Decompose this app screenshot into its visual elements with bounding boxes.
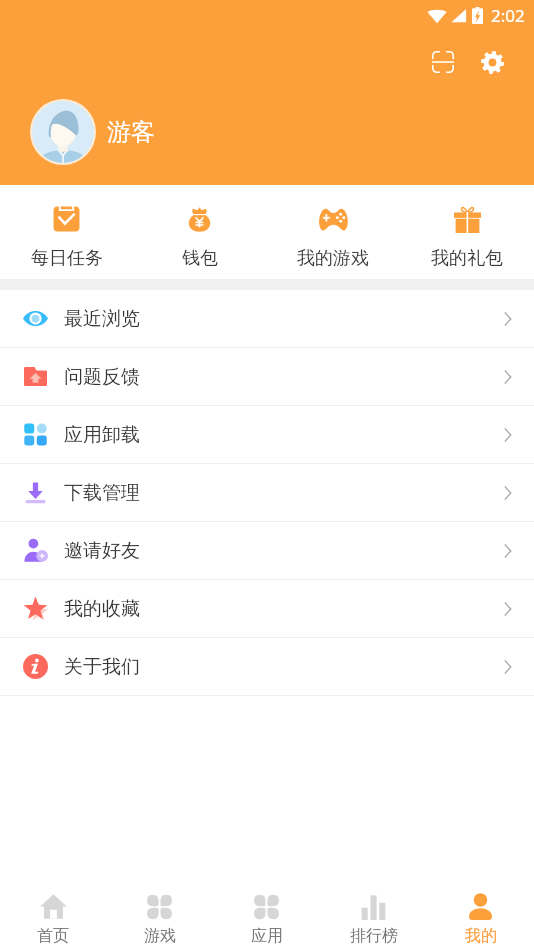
button[interactable]: 问题反馈 [0,348,534,405]
button[interactable]: 每日任务 [0,187,133,278]
button[interactable]: 关于我们 [0,638,534,695]
staticText: 我的收藏 [64,597,140,621]
button[interactable]: 应用 [213,885,320,946]
button[interactable]: 我的礼包 [400,187,534,278]
staticText: 每日任务 [31,247,103,270]
staticText: 问题反馈 [64,365,140,389]
staticText: 排行榜 [350,926,398,946]
staticText: 游戏 [144,926,176,946]
button[interactable]: 我的 [427,885,534,946]
button[interactable]: 应用卸载 [0,406,534,463]
staticText: 邀请好友 [64,539,140,563]
staticText: 关于我们 [64,655,140,679]
staticText: 最近浏览 [64,307,140,331]
staticText: 我的游戏 [297,247,369,270]
staticText: 2:02 [491,4,525,27]
button[interactable]: 游客 [30,99,534,165]
button[interactable]: 钱包 [133,187,266,278]
staticText: 游客 [107,117,155,147]
button[interactable]: 邀请好友 [0,522,534,579]
staticText: 首页 [37,926,69,946]
button[interactable]: 游戏 [106,885,213,946]
button[interactable]: 排行榜 [320,885,427,946]
staticText: 下载管理 [64,481,140,505]
staticText: 应用卸载 [64,423,140,447]
button[interactable]: 下载管理 [0,464,534,521]
button[interactable]: Settings [469,39,515,85]
staticText: 我的 [465,926,497,946]
button[interactable]: 我的游戏 [266,187,400,278]
staticText: 钱包 [182,247,218,270]
staticText: 我的礼包 [431,247,503,270]
button[interactable]: 我的收藏 [0,580,534,637]
button[interactable]: 最近浏览 [0,290,534,347]
button[interactable]: 首页 [0,885,106,946]
staticText: 应用 [251,926,283,946]
button[interactable]: Scan QR code [420,39,466,85]
